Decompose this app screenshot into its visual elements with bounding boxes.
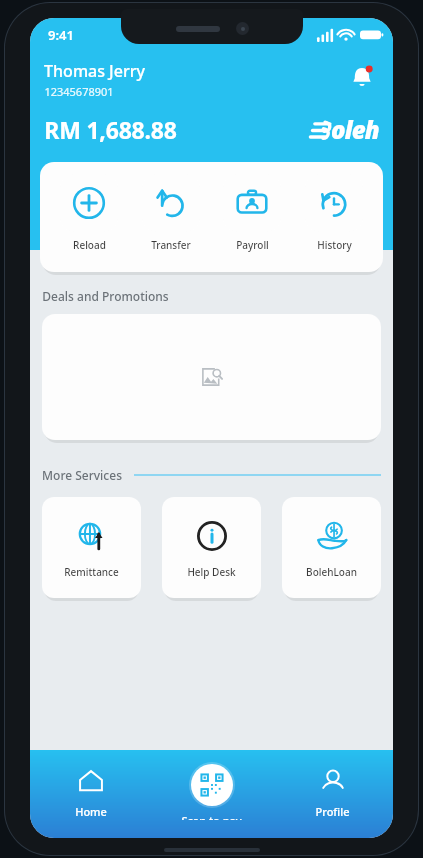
staticText: 12345678901 (44, 84, 114, 99)
button[interactable]: Help Desk (162, 497, 261, 598)
staticText: Scan to pay (181, 813, 242, 820)
staticText: Help Desk (187, 565, 236, 579)
staticText: 9:41 (48, 26, 74, 44)
staticText: Payroll (236, 238, 269, 252)
staticText: More Services (42, 467, 122, 483)
staticText: Profile (315, 804, 350, 819)
staticText: History (317, 238, 352, 252)
staticText: Transfer (151, 238, 191, 252)
button[interactable]: Scan to pay (181, 762, 242, 820)
staticText: Remittance (64, 565, 119, 579)
staticText: oleh (331, 113, 379, 146)
staticText: Deals and Promotions (42, 288, 169, 304)
button[interactable]: Reload (51, 174, 127, 252)
staticText: Reload (73, 238, 106, 252)
staticText: BolehLoan (306, 565, 357, 579)
button[interactable]: Home (75, 762, 107, 819)
button[interactable]: History (296, 174, 372, 252)
staticText: RM 1,688.88 (44, 114, 177, 145)
staticText: Home (75, 804, 107, 819)
button[interactable]: Transfer (133, 174, 209, 252)
button[interactable]: Profile (315, 762, 350, 819)
staticText: Thomas Jerry (44, 60, 145, 82)
button[interactable]: Payroll (214, 174, 290, 252)
button[interactable]: Promotion banner (42, 314, 381, 440)
button[interactable]: Notifications (345, 60, 379, 94)
button[interactable]: Remittance (42, 497, 141, 598)
button[interactable]: BolehLoan (282, 497, 381, 598)
